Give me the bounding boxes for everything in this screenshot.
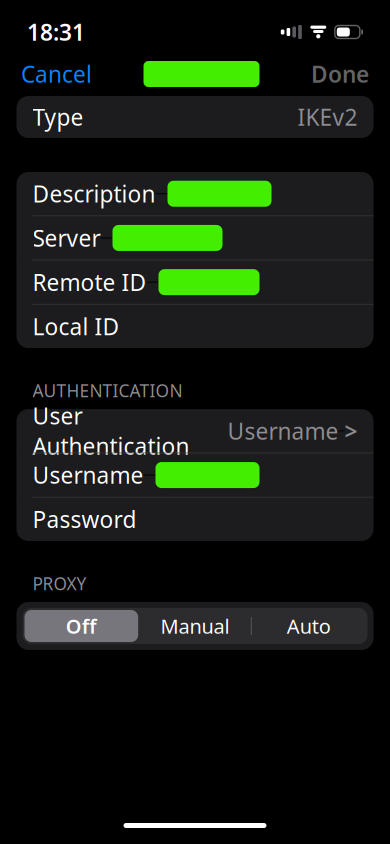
- staticText: Type: [32, 102, 83, 132]
- button[interactable]: Done: [301, 51, 379, 97]
- staticText: Auto: [287, 613, 331, 639]
- button[interactable]: Description: [16, 172, 373, 215]
- button[interactable]: User Authentication: [16, 409, 373, 453]
- staticText: Manual: [160, 613, 229, 639]
- button[interactable]: Auto: [252, 610, 365, 642]
- button[interactable]: Manual: [138, 610, 252, 642]
- staticText: Remote ID: [32, 267, 146, 297]
- button[interactable]: Remote ID: [16, 260, 373, 304]
- button[interactable]: Type: [16, 96, 373, 138]
- staticText: Done: [311, 59, 369, 89]
- staticText: AUTHENTICATION: [32, 379, 182, 402]
- staticText: Local ID: [32, 311, 119, 341]
- staticText: User Authentication: [32, 401, 189, 461]
- button[interactable]: Password: [16, 497, 373, 541]
- staticText: Username: [227, 416, 338, 446]
- staticText: 18:31: [27, 17, 85, 47]
- button[interactable]: Cancel: [11, 51, 102, 97]
- staticText: IKEv2: [297, 102, 357, 132]
- staticText: Password: [32, 504, 136, 534]
- button[interactable]: Off: [24, 610, 138, 642]
- button[interactable]: Server: [16, 216, 373, 260]
- staticText: >: [344, 416, 357, 446]
- staticText: PROXY: [32, 572, 86, 595]
- staticText: Server: [32, 223, 100, 253]
- button[interactable]: Username: [16, 453, 373, 497]
- button[interactable]: Local ID: [16, 305, 373, 348]
- staticText: Off: [66, 613, 97, 639]
- staticText: Cancel: [21, 59, 92, 89]
- staticText: Username: [32, 460, 143, 490]
- staticText: Description: [32, 179, 155, 209]
